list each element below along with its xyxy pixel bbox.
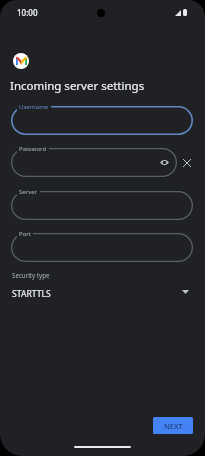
other: Show password [160,159,169,166]
button[interactable]: Clear error [180,156,193,169]
staticText: Server [19,188,38,196]
button[interactable] [11,191,193,220]
button[interactable] [11,233,193,262]
staticText: Username [19,103,49,111]
staticText: NEXT [164,421,183,431]
staticText: Password [19,145,47,153]
staticText: STARTTLS [12,288,51,300]
staticText: 10:00 [17,7,38,18]
button[interactable]: Show password [11,148,177,177]
button[interactable] [11,106,193,135]
button[interactable]: NEXT [153,417,193,434]
button[interactable]: Security type [0,268,205,302]
staticText: Incoming server settings [10,78,145,94]
staticText: Port [19,230,31,238]
staticText: Security type [12,271,50,279]
